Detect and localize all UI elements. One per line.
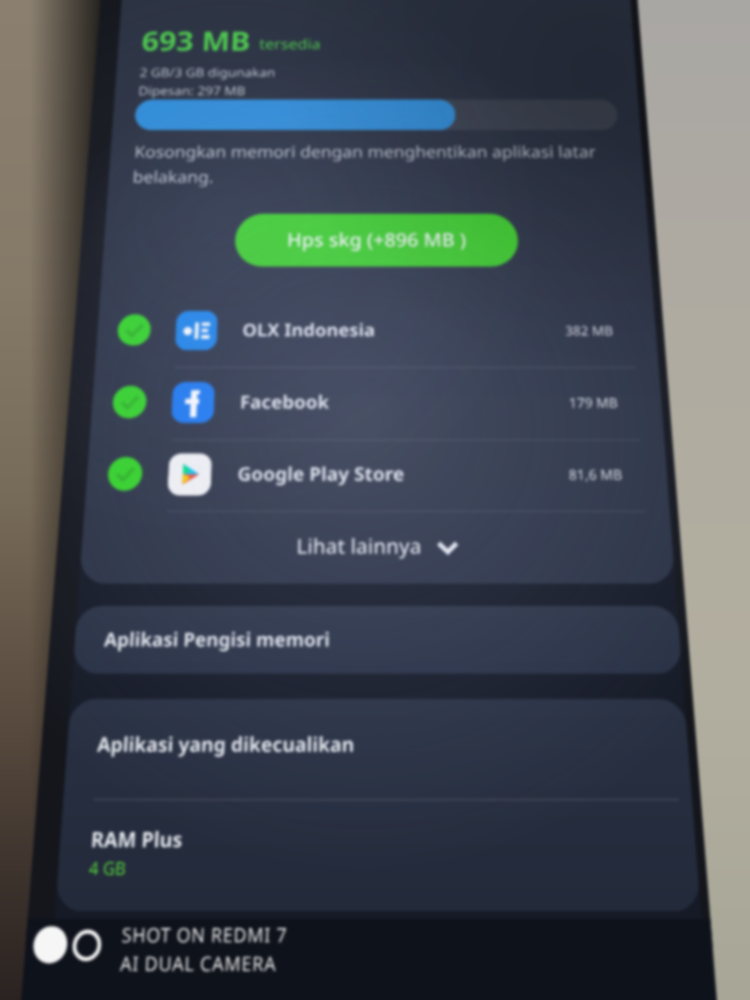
staticText: 179 MB xyxy=(568,393,619,411)
other: Selected xyxy=(107,457,143,491)
button[interactable]: Selected xyxy=(106,444,625,504)
button[interactable]: Aplikasi yang dikecualikan xyxy=(64,699,691,790)
button[interactable]: Selected xyxy=(116,303,615,358)
staticText: 4 GB xyxy=(88,856,127,880)
staticText: Lihat lainnya xyxy=(296,532,422,560)
staticText: RAM Plus xyxy=(90,825,184,854)
staticText: Google Play Store xyxy=(237,461,405,487)
staticText: Aplikasi yang dikecualikan xyxy=(96,730,355,759)
staticText: AI DUAL CAMERA xyxy=(119,950,278,977)
other: Selected xyxy=(112,386,147,418)
staticText: 81,6 MB xyxy=(568,465,624,484)
staticText: Hps skg (+896 MB ) xyxy=(287,227,466,253)
button[interactable]: Hps skg (+896 MB ) xyxy=(234,213,519,267)
other: Selected xyxy=(117,314,151,346)
staticText: Dipesan: 297 MB xyxy=(138,82,246,98)
button[interactable]: Selected xyxy=(111,373,620,431)
staticText: OLX Indonesia xyxy=(242,318,376,342)
button[interactable]: RAM Plus xyxy=(57,825,698,880)
staticText: Aplikasi Pengisi memori xyxy=(103,626,330,653)
staticText: 2 GB/3 GB digunakan xyxy=(139,64,276,80)
staticText: Kosongkan memori dengan menghentikan apl… xyxy=(132,141,637,187)
staticText: SHOT ON REDMI 7 xyxy=(121,921,288,948)
staticText: 382 MB xyxy=(565,322,614,339)
staticText: Facebook xyxy=(240,390,330,414)
button[interactable]: Lihat lainnya xyxy=(80,519,675,572)
staticText: tersedia xyxy=(259,34,321,54)
button[interactable]: Aplikasi Pengisi memori xyxy=(72,606,682,674)
staticText: 693 MB xyxy=(141,23,251,59)
